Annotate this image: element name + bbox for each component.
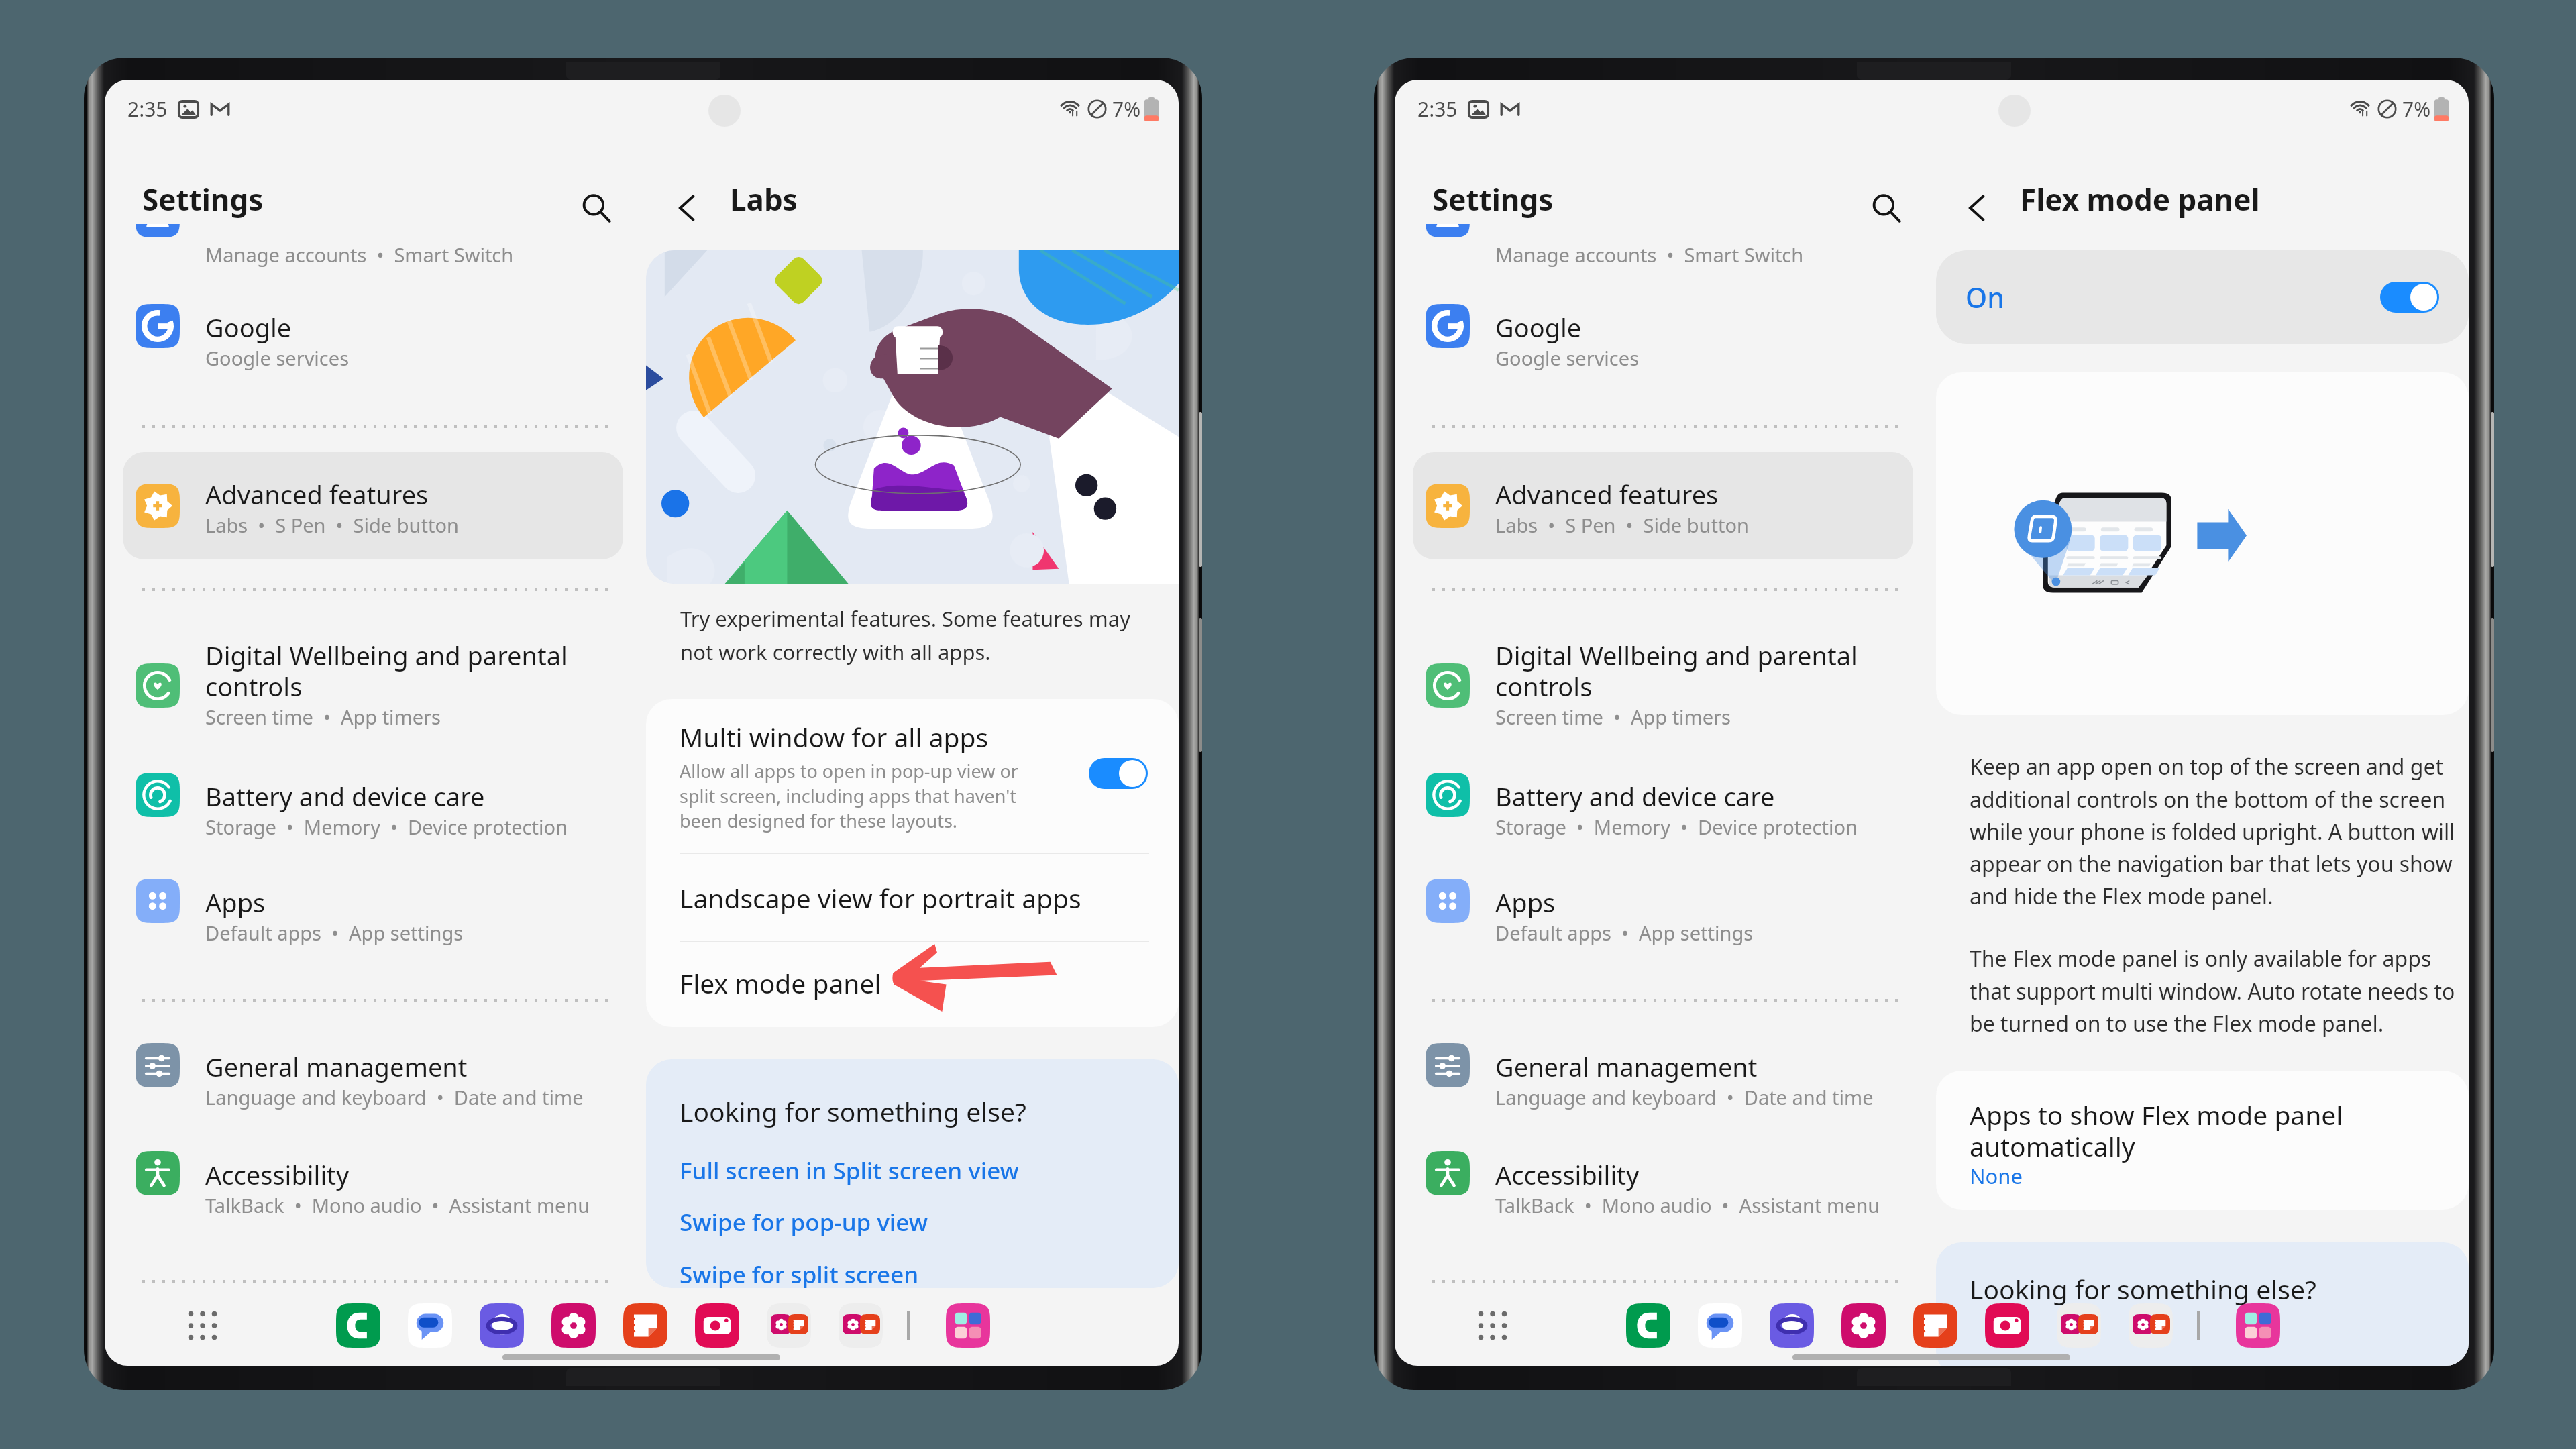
- staticText: Google services: [1495, 345, 1640, 371]
- button[interactable]: Recent apps: [946, 1303, 990, 1348]
- button[interactable]: Landscape view for portrait apps: [646, 854, 1179, 942]
- staticText: Accessibility: [205, 1157, 350, 1192]
- staticText: General management: [205, 1049, 468, 1084]
- staticText: Storage • Memory • Device protection: [205, 814, 568, 840]
- staticText: Manage accounts • Smart Switch: [1495, 241, 1804, 268]
- button[interactable]: Phone: [336, 1303, 380, 1348]
- button[interactable]: Apps to show Flex mode panel: [1936, 1071, 2469, 1210]
- button[interactable]: Search: [568, 179, 625, 237]
- staticText: Labs • S Pen • Side button: [205, 512, 459, 538]
- staticText: 7%: [1112, 95, 1141, 123]
- button[interactable]: Samsung Notes: [623, 1303, 667, 1348]
- button[interactable]: Recent apps: [2236, 1303, 2280, 1348]
- button[interactable]: Digital Wellbeing and parental: [105, 616, 643, 744]
- button[interactable]: Gallery: [551, 1303, 596, 1348]
- staticText: Language and keyboard • Date and time: [1495, 1084, 1874, 1110]
- button[interactable]: Phone: [1626, 1303, 1670, 1348]
- staticText: None: [1970, 1162, 2023, 1190]
- button[interactable]: Battery and device care: [1395, 757, 1933, 833]
- staticText: TalkBack • Mono audio • Assistant menu: [1495, 1192, 1880, 1218]
- button[interactable]: General management: [105, 1028, 643, 1103]
- button[interactable]: Search: [1858, 179, 1915, 237]
- button[interactable]: Camera: [695, 1303, 739, 1348]
- staticText: Landscape view for portrait apps: [680, 880, 1081, 916]
- button[interactable]: Advanced features: [123, 452, 623, 559]
- button[interactable]: Google: [105, 288, 643, 364]
- staticText: Default apps • App settings: [205, 920, 464, 946]
- staticText: Battery and device care: [1495, 779, 1775, 814]
- button[interactable]: Messages: [1698, 1303, 1742, 1348]
- staticText: Advanced features: [1495, 477, 1719, 512]
- staticText: Screen time • App timers: [205, 704, 441, 730]
- button[interactable]: Swipe for pop-up view: [680, 1206, 928, 1238]
- button[interactable]: Accessibility: [1395, 1136, 1933, 1211]
- button[interactable]: Multi window for all apps: [646, 699, 1179, 853]
- staticText: controls: [1495, 669, 1593, 704]
- button[interactable]: On: [1936, 250, 2469, 344]
- button[interactable]: Advanced features: [1413, 452, 1913, 559]
- staticText: Settings: [142, 179, 264, 219]
- button[interactable]: Back: [1949, 179, 2006, 237]
- button[interactable]: Camera: [1985, 1303, 2029, 1348]
- staticText: Digital Wellbeing and parental: [205, 638, 568, 673]
- staticText: automatically: [1970, 1128, 2135, 1164]
- button[interactable]: App pair: [2129, 1303, 2173, 1348]
- button[interactable]: Swipe for split screen: [680, 1258, 919, 1288]
- staticText: Looking for something else?: [680, 1093, 1026, 1129]
- button[interactable]: App pair: [767, 1303, 811, 1348]
- staticText: Accessibility: [1495, 1157, 1640, 1192]
- staticText: Keep an app open on top of the screen an…: [1970, 752, 2455, 910]
- button[interactable]: Apps: [1395, 863, 1933, 938]
- staticText: Labs • S Pen • Side button: [1495, 512, 1749, 538]
- button[interactable]: Toggle: [1089, 758, 1148, 789]
- staticText: Storage • Memory • Device protection: [1495, 814, 1858, 840]
- button[interactable]: App pair: [2057, 1303, 2101, 1348]
- staticText: Advanced features: [205, 477, 429, 512]
- staticText: Flex mode panel: [680, 965, 881, 1001]
- button[interactable]: Apps: [105, 863, 643, 938]
- staticText: Labs: [730, 179, 798, 219]
- staticText: Try experimental features. Some features…: [680, 604, 1130, 666]
- staticText: Looking for something else?: [1970, 1271, 2316, 1307]
- button[interactable]: Messages: [408, 1303, 452, 1348]
- button[interactable]: Digital Wellbeing and parental: [1395, 616, 1933, 744]
- staticText: controls: [205, 669, 303, 704]
- staticText: Default apps • App settings: [1495, 920, 1754, 946]
- button[interactable]: Battery and device care: [105, 757, 643, 833]
- staticText: 7%: [2402, 95, 2431, 123]
- staticText: Google: [205, 310, 292, 345]
- staticText: Digital Wellbeing and parental: [1495, 638, 1858, 673]
- button[interactable]: Google: [1395, 288, 1933, 364]
- button[interactable]: Toggle: [2380, 282, 2439, 313]
- button[interactable]: Internet: [1770, 1303, 1814, 1348]
- button[interactable]: Full screen in Split screen view: [680, 1155, 1019, 1187]
- button[interactable]: Internet: [480, 1303, 524, 1348]
- button[interactable]: Samsung Notes: [1913, 1303, 1957, 1348]
- staticText: Flex mode panel: [2020, 179, 2260, 219]
- staticText: Settings: [1432, 179, 1554, 219]
- button[interactable]: Gallery: [1841, 1303, 1886, 1348]
- staticText: TalkBack • Mono audio • Assistant menu: [205, 1192, 590, 1218]
- button[interactable]: All apps: [1470, 1303, 1515, 1348]
- staticText: Google: [1495, 310, 1582, 345]
- button[interactable]: Accessibility: [105, 1136, 643, 1211]
- button[interactable]: App pair: [839, 1303, 883, 1348]
- button[interactable]: General management: [1395, 1028, 1933, 1103]
- button[interactable]: Flex mode panel: [646, 939, 1179, 1027]
- staticText: Screen time • App timers: [1495, 704, 1731, 730]
- staticText: Apps: [1495, 885, 1556, 920]
- button[interactable]: Back: [659, 179, 716, 237]
- staticText: Apps to show Flex mode panel: [1970, 1097, 2343, 1132]
- staticText: The Flex mode panel is only available fo…: [1970, 944, 2455, 1038]
- staticText: 2:35: [127, 95, 168, 123]
- staticText: Language and keyboard • Date and time: [205, 1084, 584, 1110]
- staticText: Multi window for all apps: [680, 719, 989, 755]
- staticText: General management: [1495, 1049, 1758, 1084]
- staticText: Battery and device care: [205, 779, 485, 814]
- staticText: Google services: [205, 345, 350, 371]
- staticText: On: [1966, 278, 2004, 316]
- staticText: Allow all apps to open in pop-up view or…: [680, 759, 1018, 833]
- staticText: Apps: [205, 885, 266, 920]
- staticText: 2:35: [1417, 95, 1458, 123]
- button[interactable]: All apps: [180, 1303, 225, 1348]
